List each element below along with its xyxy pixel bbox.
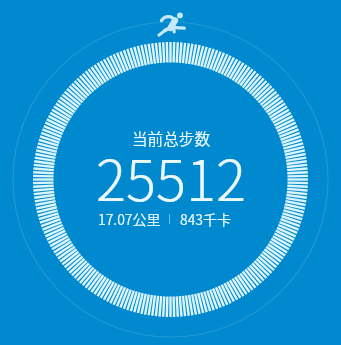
staticText: 17.07公里 xyxy=(98,209,161,229)
staticText: 843千卡 xyxy=(180,209,232,229)
staticText: 当前总步数 xyxy=(132,127,210,150)
staticText: 25512 xyxy=(96,136,246,217)
button[interactable]: Running activity xyxy=(156,9,186,39)
button[interactable] xyxy=(85,120,256,232)
